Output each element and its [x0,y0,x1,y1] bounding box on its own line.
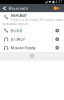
staticText: Bluetooth [8,6,28,11]
button[interactable]: BUX 8 [0,26,64,35]
staticText: Movian Handy [11,45,36,50]
button[interactable]: Bluetooth on [53,4,64,12]
button[interactable]: SGH-I637 [0,12,64,22]
staticText: SGH-I637 [11,13,27,18]
staticText: 4:27 [56,0,63,4]
staticText: BUX 8 [11,28,22,33]
staticText: AVAILABLE DEVICES [3,22,28,26]
button[interactable]: Movian Handy [0,43,64,52]
staticText: BT-WLP [11,36,25,42]
staticText: Visible to all nearby Bluetooth devices [11,18,64,22]
button[interactable]: Recent apps [26,52,38,60]
button[interactable]: Back [0,4,8,12]
button[interactable]: BT-WLP [0,35,64,43]
